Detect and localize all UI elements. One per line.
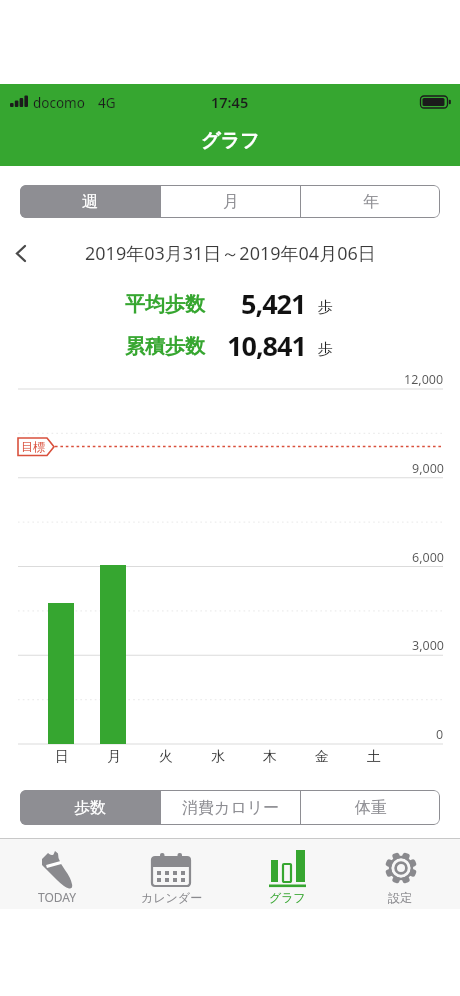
staticText: 17:45	[211, 92, 249, 110]
staticText: 0	[436, 726, 444, 743]
button[interactable]: 体重	[301, 790, 440, 825]
staticText: 週	[82, 192, 98, 212]
staticText: 月	[223, 192, 239, 212]
staticText: グラフ	[201, 129, 260, 153]
staticText: 土	[367, 748, 381, 766]
staticText: 水	[211, 748, 225, 766]
staticText: 木	[263, 748, 277, 766]
staticText: 月	[107, 748, 121, 766]
staticText: カレンダー	[141, 890, 203, 905]
staticText: 火	[159, 748, 173, 766]
button[interactable]: 年	[301, 185, 440, 218]
staticText: 平均歩数	[125, 292, 205, 317]
staticText: 2019年03月31日～2019年04月06日	[85, 241, 376, 265]
button[interactable]	[15, 245, 27, 262]
button[interactable]: 歩数	[20, 790, 160, 825]
staticText: 5,421	[241, 285, 306, 322]
staticText: 歩	[318, 340, 333, 359]
button[interactable]	[360, 840, 440, 908]
button[interactable]: 月	[161, 185, 300, 218]
staticText: 歩	[318, 298, 333, 317]
button[interactable]	[132, 840, 212, 908]
staticText: 金	[315, 748, 329, 766]
button[interactable]: 消費カロリー	[161, 790, 300, 825]
staticText: 10,841	[227, 327, 306, 364]
staticText: グラフ	[269, 890, 306, 905]
staticText: 6,000	[412, 549, 444, 566]
staticText: 設定	[388, 890, 412, 905]
staticText: 消費カロリー	[182, 798, 280, 818]
staticText: 12,000	[404, 371, 444, 388]
button[interactable]: 週	[20, 185, 160, 218]
button[interactable]	[17, 840, 97, 908]
staticText: 体重	[355, 798, 387, 818]
staticText: 9,000	[412, 460, 444, 477]
staticText: 年	[363, 192, 379, 212]
staticText: docomo	[33, 94, 85, 112]
staticText: 目標	[21, 439, 45, 454]
staticText: 4G	[98, 94, 116, 112]
staticText: 累積歩数	[125, 334, 205, 359]
staticText: 3,000	[412, 637, 444, 654]
button[interactable]	[247, 840, 327, 908]
staticText: 日	[55, 748, 69, 766]
staticText: 歩数	[74, 798, 106, 818]
staticText: TODAY	[38, 889, 77, 905]
